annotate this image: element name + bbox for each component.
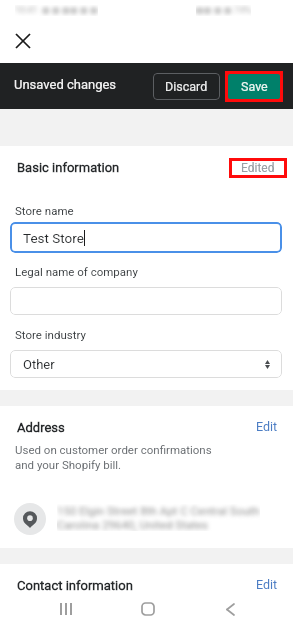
button[interactable]: Discard <box>153 73 220 100</box>
staticText: Basic information <box>17 160 120 175</box>
button[interactable]: Other <box>10 350 282 378</box>
button[interactable]: Home <box>128 597 168 621</box>
staticText: Legal name of company <box>15 265 138 278</box>
button[interactable]: Save <box>228 74 280 99</box>
button[interactable]: Address location <box>14 503 46 535</box>
staticText: Edit <box>256 419 278 434</box>
staticText: Save <box>241 79 268 94</box>
staticText: Address <box>17 420 65 435</box>
button[interactable]: Edit <box>256 577 278 592</box>
staticText: Unsaved changes <box>14 77 117 92</box>
button[interactable]: Test Store <box>10 222 282 253</box>
button[interactable]: Recent apps <box>46 597 86 621</box>
staticText: Discard <box>165 79 208 94</box>
staticText: Carolina 29640, United States <box>57 518 209 531</box>
staticText: Store name <box>15 204 74 217</box>
button[interactable]: Edited <box>229 158 287 178</box>
staticText: ●● ● ● 74% <box>196 5 251 16</box>
staticText: Edited <box>241 161 275 175</box>
staticText: Edit <box>256 577 278 592</box>
staticText: 150 Elgin Street 8th Apt C Central South <box>57 504 260 517</box>
button[interactable] <box>10 287 282 315</box>
staticText: Store industry <box>15 328 86 341</box>
staticText: and your Shopify bill. <box>15 458 122 471</box>
button[interactable]: Close <box>8 26 37 55</box>
button[interactable]: Edit <box>256 419 278 434</box>
button[interactable]: Back <box>210 597 250 621</box>
staticText: 10:41 ● ● ●● ● ● <box>15 5 98 16</box>
staticText: Used on customer order confirmations <box>15 443 212 456</box>
staticText: Other <box>23 357 55 372</box>
staticText: Contact information <box>17 578 133 593</box>
staticText: Test Store <box>23 230 84 246</box>
